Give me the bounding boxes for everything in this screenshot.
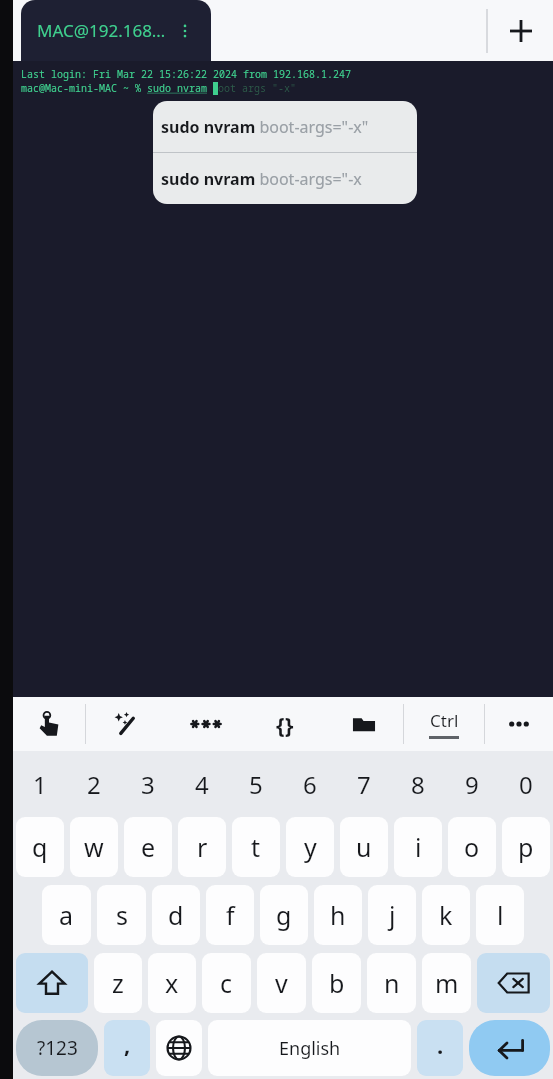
staticText: p <box>518 830 534 864</box>
staticText: c <box>220 966 233 1000</box>
staticText: ?123 <box>37 1035 78 1061</box>
button[interactable]: Shift <box>16 953 88 1013</box>
button[interactable]: j <box>368 885 416 945</box>
staticText: sudo nvram boot-args="-x" <box>161 116 369 138</box>
button[interactable]: h <box>314 885 362 945</box>
staticText: r <box>197 830 208 864</box>
button[interactable]: p <box>502 817 550 877</box>
button[interactable]: o <box>448 817 496 877</box>
staticText: h <box>330 898 346 932</box>
button[interactable]: r <box>178 817 226 877</box>
button[interactable]: 3 <box>121 755 175 813</box>
button[interactable]: q <box>16 817 64 877</box>
button[interactable]: , <box>104 1020 150 1076</box>
staticText: m <box>435 966 459 1000</box>
staticText: 4 <box>195 768 209 801</box>
button[interactable]: z <box>94 953 142 1013</box>
button[interactable]: Braces <box>245 697 324 751</box>
button[interactable]: l <box>476 885 524 945</box>
staticText: Ctrl <box>430 709 459 732</box>
staticText: {} <box>276 709 294 739</box>
staticText: f <box>226 898 235 932</box>
button[interactable]: g <box>260 885 308 945</box>
staticText: q <box>32 830 48 864</box>
staticText: English <box>279 1036 341 1061</box>
staticText: 5 <box>249 768 263 801</box>
button[interactable]: Files <box>324 697 403 751</box>
staticText: y <box>304 830 317 864</box>
button[interactable]: v <box>257 953 306 1013</box>
button[interactable]: Change language <box>156 1020 202 1076</box>
button[interactable]: More <box>485 697 553 751</box>
button[interactable]: 1 <box>13 755 67 813</box>
staticText: . <box>437 1030 444 1060</box>
staticText: , <box>124 1029 131 1059</box>
staticText: a <box>59 898 74 932</box>
staticText: x <box>165 966 179 1000</box>
staticText: g <box>276 898 292 932</box>
button[interactable]: x <box>148 953 196 1013</box>
button[interactable]: c <box>202 953 251 1013</box>
button[interactable]: d <box>152 885 200 945</box>
button[interactable]: w <box>70 817 118 877</box>
button[interactable]: s <box>97 885 146 945</box>
staticText: 3 <box>141 768 155 801</box>
staticText: e <box>141 830 156 864</box>
button[interactable]: Enter <box>469 1020 550 1076</box>
button[interactable]: n <box>367 953 416 1013</box>
button[interactable]: ?123 <box>16 1020 98 1076</box>
button[interactable]: i <box>394 817 442 877</box>
button[interactable]: e <box>124 817 172 877</box>
button[interactable]: 4 <box>175 755 229 813</box>
staticText: u <box>356 830 372 864</box>
button[interactable]: Tab options <box>174 20 195 42</box>
button[interactable]: English <box>208 1020 411 1076</box>
button[interactable]: Password <box>166 697 245 751</box>
button[interactable]: 7 <box>337 755 391 813</box>
button[interactable]: . <box>417 1020 463 1076</box>
button[interactable]: 0 <box>499 755 553 813</box>
staticText: 1 <box>33 768 47 801</box>
staticText: mac@Mac-mini-MAC ~ % <box>21 81 147 95</box>
button[interactable]: Touch mode <box>13 697 85 751</box>
button[interactable]: b <box>312 953 361 1013</box>
staticText: d <box>168 898 184 932</box>
button[interactable]: u <box>340 817 388 877</box>
button[interactable]: m <box>422 953 471 1013</box>
button[interactable]: 5 <box>229 755 283 813</box>
button[interactable]: New tab <box>497 7 545 55</box>
staticText: w <box>84 830 104 864</box>
button[interactable]: MAC@192.168… <box>21 0 211 61</box>
button[interactable]: a <box>42 885 91 945</box>
staticText: j <box>389 898 396 932</box>
button[interactable]: sudo nvram boot-args="-x <box>153 153 417 204</box>
staticText: MAC@192.168… <box>37 19 166 42</box>
staticText: 7 <box>357 768 371 801</box>
button[interactable]: sudo nvram boot-args="-x" <box>153 101 417 152</box>
staticText: n <box>384 966 400 1000</box>
button[interactable]: 9 <box>445 755 499 813</box>
button[interactable]: 2 <box>67 755 121 813</box>
staticText: k <box>439 898 453 932</box>
staticText: o <box>464 830 480 864</box>
button[interactable]: k <box>422 885 470 945</box>
button[interactable]: t <box>232 817 280 877</box>
button[interactable]: f <box>206 885 254 945</box>
button[interactable]: y <box>286 817 334 877</box>
staticText: l <box>497 898 504 932</box>
staticText: oot args "-x" <box>218 81 296 95</box>
staticText: sudo nvram <box>147 81 213 95</box>
button[interactable]: Ctrl <box>404 697 484 751</box>
button[interactable]: 8 <box>391 755 445 813</box>
staticText: z <box>112 966 124 1000</box>
staticText: 2 <box>87 768 101 801</box>
staticText: 6 <box>303 768 317 801</box>
staticText: 0 <box>519 768 533 801</box>
button[interactable]: AI assist <box>86 697 166 751</box>
staticText: t <box>251 830 261 864</box>
button[interactable]: Backspace <box>477 953 550 1013</box>
button[interactable]: 6 <box>283 755 337 813</box>
staticText: sudo nvram boot-args="-x <box>161 168 362 190</box>
staticText: s <box>116 898 128 932</box>
staticText: b <box>329 966 345 1000</box>
